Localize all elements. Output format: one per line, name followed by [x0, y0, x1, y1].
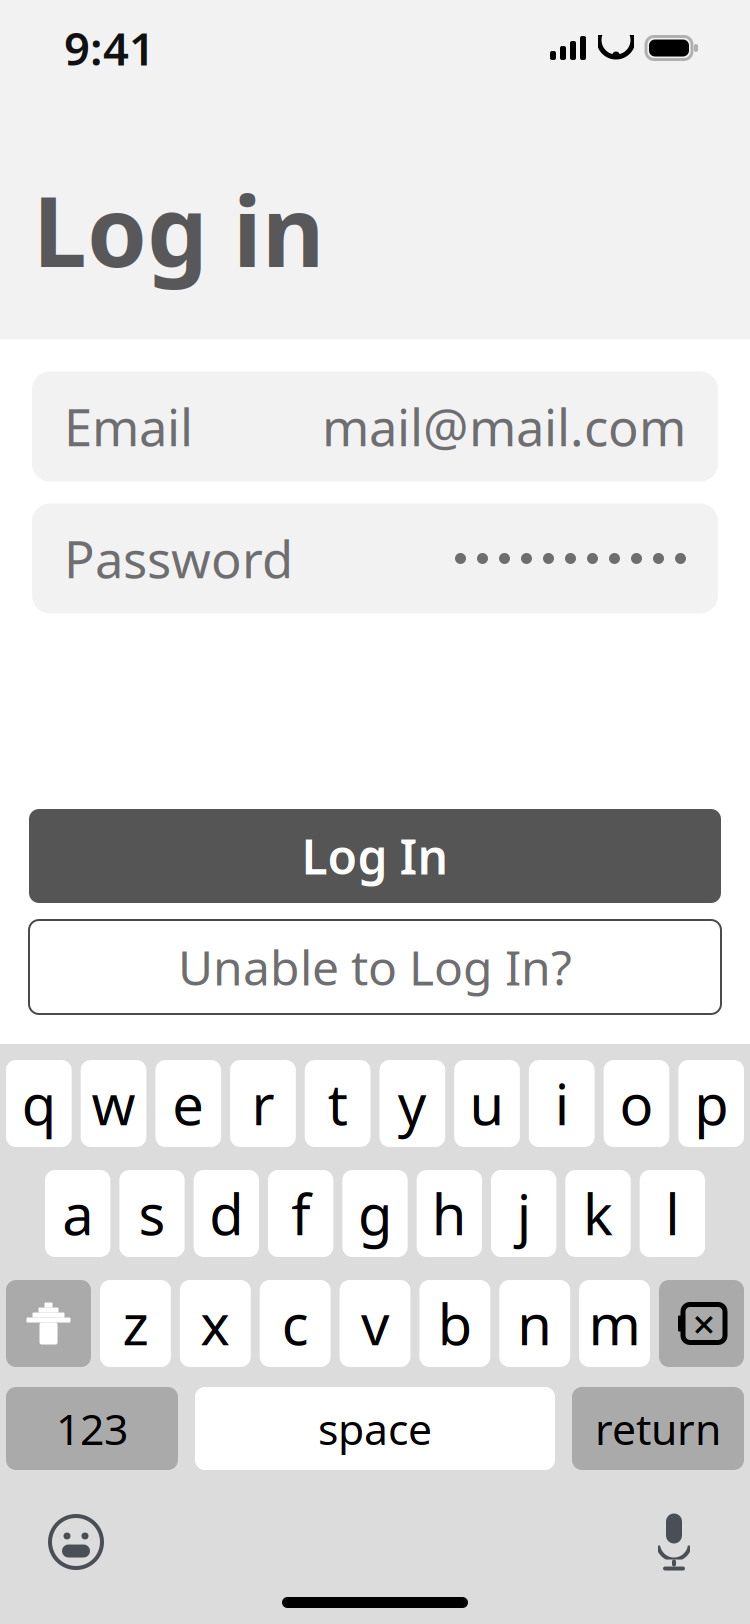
button[interactable]: Emoji keyboard	[40, 1506, 112, 1578]
staticText: u	[469, 1066, 504, 1141]
staticText: Unable to Log In?	[178, 935, 572, 999]
button[interactable]: Password	[32, 503, 718, 613]
staticText: d	[209, 1176, 243, 1251]
staticText: e	[172, 1066, 204, 1141]
staticText: return	[595, 1400, 721, 1457]
staticText: l	[665, 1176, 679, 1251]
staticText: t	[328, 1066, 348, 1141]
staticText: k	[583, 1176, 613, 1251]
staticText: Log in	[33, 166, 324, 293]
staticText: r	[251, 1066, 274, 1141]
button[interactable]: m	[579, 1280, 650, 1367]
button[interactable]: h	[417, 1170, 482, 1257]
button[interactable]: v	[340, 1280, 410, 1367]
staticText: h	[432, 1176, 467, 1251]
button[interactable]: a	[45, 1170, 110, 1257]
staticText: w	[91, 1066, 135, 1141]
staticText: j	[517, 1176, 531, 1251]
button[interactable]: l	[640, 1170, 705, 1257]
button[interactable]: n	[499, 1280, 570, 1367]
staticText: y	[398, 1066, 427, 1141]
staticText: Password	[64, 525, 293, 592]
staticText: g	[358, 1176, 392, 1251]
staticText: o	[619, 1066, 653, 1141]
button[interactable]: q	[6, 1060, 72, 1147]
staticText: f	[291, 1176, 310, 1251]
staticText: n	[517, 1286, 552, 1361]
staticText: i	[555, 1066, 569, 1141]
staticText: x	[200, 1286, 230, 1361]
button[interactable]: r	[230, 1060, 296, 1147]
button[interactable]: s	[119, 1170, 185, 1257]
staticText: m	[589, 1286, 641, 1361]
button[interactable]: o	[604, 1060, 669, 1147]
button[interactable]: e	[155, 1060, 221, 1147]
button[interactable]: y	[379, 1060, 445, 1147]
button[interactable]: Delete	[659, 1280, 744, 1367]
staticText: s	[138, 1176, 165, 1251]
staticText: v	[361, 1286, 389, 1361]
button[interactable]: c	[260, 1280, 331, 1367]
button[interactable]: Unable to Log In?	[29, 920, 721, 1014]
button[interactable]: k	[565, 1170, 631, 1257]
button[interactable]: u	[454, 1060, 520, 1147]
button[interactable]: t	[305, 1060, 370, 1147]
button[interactable]: b	[419, 1280, 490, 1367]
staticText: ×	[692, 1297, 715, 1350]
staticText: 123	[56, 1400, 128, 1457]
staticText: p	[694, 1066, 728, 1141]
button[interactable]: g	[342, 1170, 408, 1257]
staticText: z	[122, 1286, 148, 1361]
button[interactable]: Shift	[6, 1280, 91, 1367]
button[interactable]: p	[678, 1060, 744, 1147]
button[interactable]: d	[194, 1170, 259, 1257]
button[interactable]: return	[572, 1387, 744, 1470]
button[interactable]: Log In	[29, 809, 721, 903]
staticText: Email	[64, 393, 193, 460]
button[interactable]: z	[100, 1280, 171, 1367]
button[interactable]: w	[81, 1060, 146, 1147]
button[interactable]: Dictate	[638, 1506, 710, 1578]
staticText: b	[438, 1286, 472, 1361]
button[interactable]: Email	[32, 371, 718, 481]
button[interactable]: space	[195, 1387, 555, 1470]
staticText: a	[62, 1176, 93, 1251]
button[interactable]: f	[268, 1170, 333, 1257]
staticText: space	[318, 1400, 432, 1457]
staticText: Log In	[301, 824, 448, 888]
button[interactable]: j	[491, 1170, 556, 1257]
button[interactable]: x	[180, 1280, 251, 1367]
staticText: q	[22, 1066, 56, 1141]
staticText: c	[282, 1286, 309, 1361]
staticText: mail@mail.com	[322, 393, 686, 460]
button[interactable]: 123	[6, 1387, 178, 1470]
button[interactable]: i	[529, 1060, 595, 1147]
staticText: 9:41	[64, 18, 155, 78]
